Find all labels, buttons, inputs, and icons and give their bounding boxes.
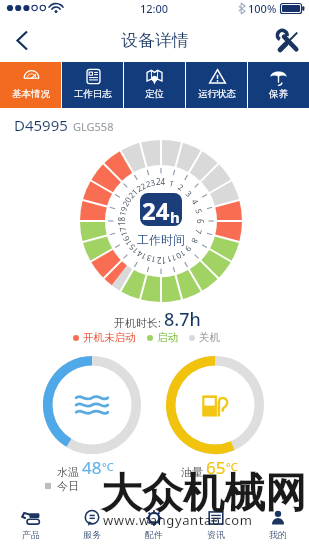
button[interactable]: 运行状态 [186, 62, 247, 108]
staticText: 11 [165, 252, 177, 266]
button[interactable]: 基本情况 [0, 62, 61, 108]
button[interactable]: 我的 [247, 503, 309, 550]
button[interactable]: 配件 [123, 503, 185, 550]
staticText: 14 [134, 248, 148, 262]
staticText: 产品 [22, 529, 40, 540]
staticText: 2 [176, 181, 186, 193]
staticText: 16 [119, 234, 134, 248]
staticText: 启动 [157, 331, 178, 344]
staticText: 4 [189, 197, 201, 207]
staticText: 9 [183, 244, 194, 255]
button[interactable]: 保养 [248, 62, 309, 108]
staticText: 工作日志 [74, 88, 112, 100]
staticText: 20 [119, 194, 134, 208]
staticText: D45995 [14, 115, 68, 135]
staticText: 开机时长: [114, 315, 164, 330]
staticText: 7 [193, 228, 205, 236]
staticText: 关机 [199, 331, 220, 344]
staticText: 10 [174, 248, 188, 262]
staticText: 大众机械网 [101, 468, 306, 520]
button[interactable]: 资讯 [185, 503, 247, 550]
staticText: 水温 [57, 464, 82, 479]
staticText: 15 [126, 241, 140, 256]
staticText: 19 [116, 204, 129, 217]
button[interactable]: 服务 [61, 503, 123, 550]
staticText: 13 [144, 252, 157, 266]
staticText: °C [226, 459, 238, 474]
staticText: 24 [156, 176, 166, 187]
staticText: 24 [142, 194, 170, 226]
staticText: 3 [184, 188, 195, 199]
staticText: 12:00 [140, 1, 169, 16]
staticText: 21 [126, 186, 140, 200]
button[interactable]: Tools [265, 18, 309, 62]
button[interactable]: 工作日志 [62, 62, 123, 108]
staticText: 油量 [181, 464, 206, 479]
staticText: 100% [248, 1, 277, 16]
staticText: 基本情况 [12, 88, 50, 100]
staticText: 23 [144, 176, 157, 189]
staticText: 18 [116, 216, 127, 226]
button[interactable]: 产品 [0, 503, 61, 550]
staticText: 48 [82, 456, 102, 479]
staticText: 保养 [269, 88, 288, 100]
staticText: 开机未启动 [83, 331, 136, 344]
staticText: 17 [116, 225, 129, 237]
staticText: 12 [156, 255, 166, 266]
staticText: 服务 [83, 529, 101, 540]
button[interactable]: 定位 [124, 62, 185, 108]
staticText: GLG558 [73, 119, 114, 134]
staticText: 8.7h [164, 307, 201, 332]
staticText: 定位 [145, 88, 164, 100]
staticText: h [170, 207, 180, 226]
staticText: 今日 [57, 479, 79, 493]
staticText: 工作时间 [137, 232, 185, 247]
staticText: 运行状态 [198, 88, 236, 100]
staticText: 配件 [145, 529, 163, 540]
staticText: °C [102, 459, 114, 474]
staticText: 我的 [269, 529, 287, 540]
staticText: 65 [206, 456, 226, 479]
staticText: 6 [195, 219, 206, 224]
staticText: 8 [189, 236, 201, 246]
button[interactable]: Back [0, 18, 44, 62]
staticText: 5 [193, 207, 205, 215]
staticText: www.wangyantao.com [103, 511, 253, 529]
staticText: 设备详情 [121, 30, 189, 51]
staticText: 22 [134, 179, 148, 194]
staticText: 1 [168, 177, 176, 189]
staticText: 资讯 [207, 529, 225, 540]
